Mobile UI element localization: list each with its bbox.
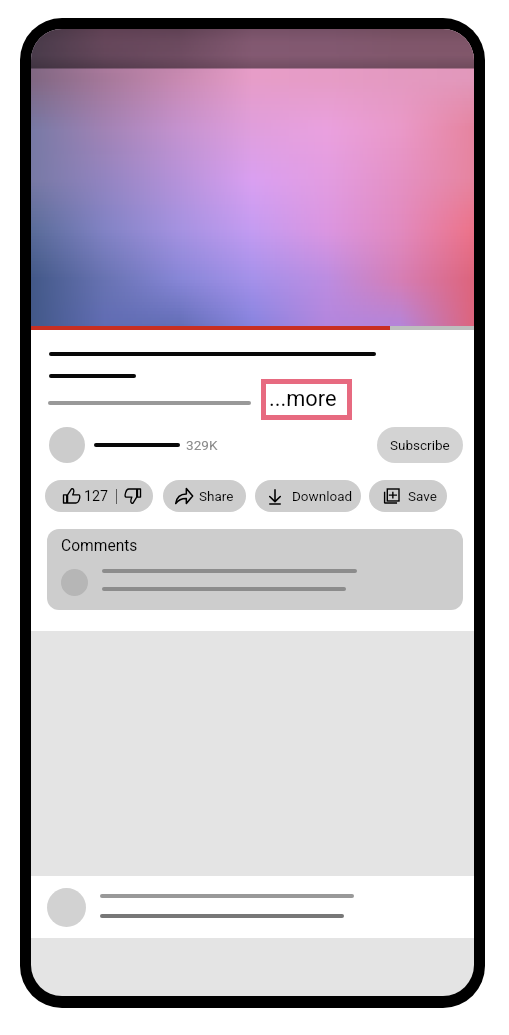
button[interactable]: Channel avatar: [49, 427, 85, 463]
staticText: 127: [84, 488, 109, 505]
button[interactable]: Subscribe: [377, 427, 463, 463]
button[interactable]: Comments: [47, 529, 463, 610]
button[interactable]: Share: [163, 480, 246, 512]
button[interactable]: ...more: [261, 379, 352, 420]
button[interactable]: [31, 876, 474, 938]
staticText: Subscribe: [390, 437, 450, 453]
button[interactable]: Download: [255, 480, 361, 512]
staticText: 329K: [186, 437, 218, 453]
button[interactable]: Save: [369, 480, 447, 512]
staticText: ...more: [269, 386, 337, 412]
staticText: Comments: [61, 537, 138, 555]
staticText: Share: [199, 488, 234, 504]
button[interactable]: 127: [45, 480, 153, 512]
staticText: Save: [408, 488, 437, 504]
staticText: Download: [292, 488, 353, 504]
